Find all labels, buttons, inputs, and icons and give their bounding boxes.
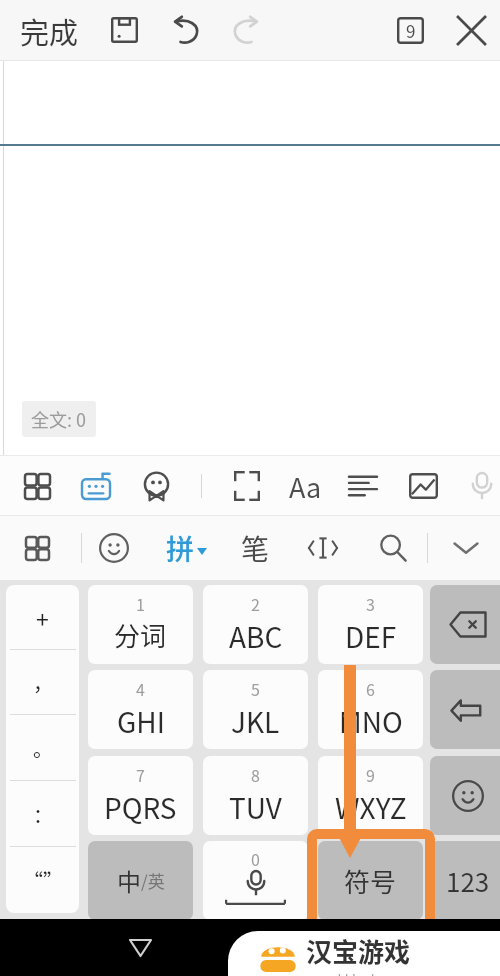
staticText: TUV bbox=[229, 787, 282, 828]
button[interactable]: Align bbox=[339, 460, 387, 512]
button[interactable]: 符号 bbox=[318, 841, 423, 920]
button[interactable]: Undo bbox=[162, 4, 208, 56]
staticText: 3 bbox=[366, 592, 375, 615]
button[interactable]: Emoji bbox=[430, 756, 500, 835]
staticText: 拼 bbox=[166, 528, 195, 569]
staticText: 6 bbox=[366, 677, 375, 700]
button[interactable]: Pinyin input bbox=[160, 522, 212, 574]
staticText: 123 bbox=[446, 862, 490, 900]
staticText: 1 bbox=[136, 592, 145, 615]
staticText: 符号 bbox=[344, 862, 397, 900]
button[interactable]: MNO bbox=[318, 670, 423, 749]
staticText: ： bbox=[33, 800, 53, 829]
staticText: PQRS bbox=[104, 787, 177, 828]
button[interactable]: GHI bbox=[88, 670, 193, 749]
staticText: /英 bbox=[141, 868, 165, 893]
button[interactable]: 。 bbox=[6, 715, 79, 781]
staticText: 8 bbox=[251, 763, 260, 786]
button[interactable]: 分词 bbox=[88, 585, 193, 664]
staticText: 完成 bbox=[20, 10, 79, 52]
button[interactable]: “” bbox=[6, 847, 79, 913]
button[interactable]: Move cursor bbox=[297, 522, 349, 574]
staticText: 7 bbox=[136, 763, 145, 786]
staticText: 笔 bbox=[241, 528, 270, 569]
button[interactable]: Font bbox=[281, 460, 329, 512]
staticText: 4 bbox=[136, 677, 145, 700]
staticText: 汉宝游戏 bbox=[306, 932, 411, 970]
button[interactable]: Hide keyboard bbox=[440, 522, 492, 574]
staticText: 中 bbox=[117, 863, 141, 898]
staticText: 0 bbox=[251, 847, 260, 870]
button[interactable]: Image bbox=[399, 460, 447, 512]
button[interactable]: Space / voice bbox=[203, 841, 308, 920]
staticText: “” bbox=[23, 866, 63, 895]
button[interactable]: 123 bbox=[430, 841, 500, 920]
staticText: 9 bbox=[406, 18, 416, 43]
staticText: JKL bbox=[231, 701, 280, 742]
staticText: www.hbherb.com bbox=[306, 970, 406, 976]
button[interactable]: Recents bbox=[342, 919, 394, 976]
button[interactable]: PQRS bbox=[88, 756, 193, 835]
button[interactable]: Select all bbox=[223, 460, 271, 512]
button[interactable]: Keyboard bbox=[72, 460, 120, 512]
button[interactable]: ABC bbox=[203, 585, 308, 664]
button[interactable]: Close bbox=[448, 4, 494, 56]
button[interactable]: Home bbox=[224, 919, 276, 976]
button[interactable]: + bbox=[6, 585, 79, 650]
button[interactable]: Back bbox=[114, 919, 166, 976]
button[interactable]: JKL bbox=[203, 670, 308, 749]
button[interactable]: Handwriting bbox=[229, 522, 281, 574]
button[interactable]: Emoji bbox=[88, 522, 140, 574]
staticText: ABC bbox=[229, 616, 283, 657]
staticText: 全文: 0 bbox=[31, 406, 87, 432]
button[interactable]: Voice input bbox=[458, 460, 500, 512]
staticText: 。 bbox=[33, 734, 53, 763]
staticText: + bbox=[36, 601, 49, 634]
staticText: WXYZ bbox=[335, 787, 407, 828]
button[interactable]: WXYZ bbox=[318, 756, 423, 835]
button[interactable]: Backspace bbox=[430, 585, 500, 664]
button[interactable]: ： bbox=[6, 781, 79, 847]
staticText: Aa bbox=[289, 467, 322, 506]
button[interactable]: Enter bbox=[430, 670, 500, 749]
button[interactable]: 完成 bbox=[10, 8, 88, 54]
button[interactable]: 全文: 0 bbox=[22, 401, 96, 437]
staticText: 9 bbox=[366, 763, 375, 786]
staticText: 5 bbox=[251, 677, 260, 700]
button[interactable]: Panel bbox=[11, 522, 63, 574]
button[interactable]: ， bbox=[6, 650, 79, 715]
button[interactable]: Grid bbox=[13, 460, 61, 512]
staticText: 分词 bbox=[114, 616, 167, 654]
button[interactable]: Page count bbox=[390, 6, 430, 54]
button[interactable]: DEF bbox=[318, 585, 423, 664]
button[interactable]: Sticker bbox=[132, 460, 180, 512]
staticText: GHI bbox=[117, 701, 165, 742]
staticText: DEF bbox=[345, 616, 397, 657]
button[interactable]: Redo bbox=[224, 4, 270, 56]
staticText: 2 bbox=[251, 592, 260, 615]
button[interactable]: Save bbox=[104, 6, 144, 54]
button[interactable]: TUV bbox=[203, 756, 308, 835]
staticText: MNO bbox=[339, 701, 403, 742]
button[interactable]: 中英 bbox=[88, 841, 193, 920]
button[interactable]: Search bbox=[367, 522, 419, 574]
staticText: ， bbox=[33, 668, 53, 697]
